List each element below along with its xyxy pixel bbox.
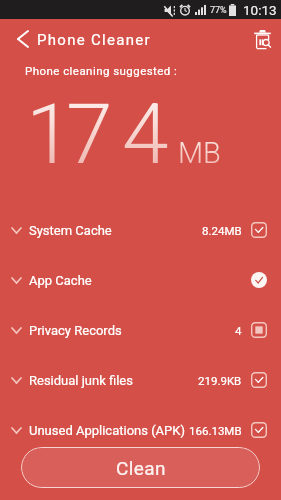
button[interactable]: App Cache bbox=[0, 255, 281, 305]
staticText: Unused Applications (APK) bbox=[29, 423, 185, 438]
staticText: 10:13 bbox=[243, 2, 277, 18]
button[interactable]: Residual junk files bbox=[0, 355, 281, 405]
staticText: Privacy Records bbox=[29, 323, 122, 338]
staticText: Residual junk files bbox=[29, 373, 133, 388]
staticText: 219.9KB bbox=[198, 374, 242, 387]
button[interactable]: Privacy Records bbox=[0, 305, 281, 355]
staticText: 1 bbox=[26, 85, 73, 183]
button[interactable]: Clean bbox=[21, 447, 260, 488]
button[interactable]: System Cache bbox=[0, 205, 281, 255]
staticText: System Cache bbox=[29, 223, 112, 238]
staticText: Phone cleaning suggested : bbox=[25, 64, 178, 77]
staticText: 166.13MB bbox=[189, 424, 242, 437]
staticText: MB bbox=[178, 136, 221, 170]
staticText: 77% bbox=[210, 5, 227, 16]
staticText: Phone Cleaner bbox=[37, 31, 151, 49]
staticText: Clean bbox=[116, 457, 166, 479]
staticText: 7 bbox=[66, 85, 113, 183]
button[interactable]: Unused Applications (APK) bbox=[0, 405, 281, 455]
staticText: App Cache bbox=[29, 273, 92, 288]
staticText: 4 bbox=[235, 324, 242, 337]
staticText: 4 bbox=[122, 85, 169, 183]
button[interactable]: Back bbox=[8, 24, 38, 54]
button[interactable]: Scan junk files bbox=[246, 22, 280, 56]
staticText: 8.24MB bbox=[202, 224, 242, 237]
